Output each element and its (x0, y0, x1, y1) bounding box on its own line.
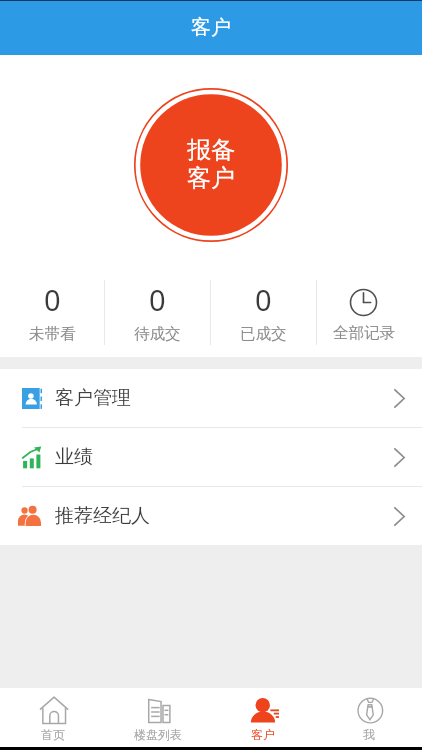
button[interactable]: 全部记录 (317, 271, 422, 353)
button[interactable]: 客户管理 (0, 369, 422, 427)
button[interactable]: 我 (316, 688, 422, 750)
staticText: 客户 (191, 15, 231, 40)
staticText: 0 (255, 280, 272, 319)
button[interactable]: 0 (211, 271, 316, 353)
button[interactable]: 推荐经纪人 (0, 487, 422, 545)
staticText: 0 (149, 280, 166, 319)
staticText: 客户管理 (55, 386, 131, 410)
staticText: 未带看 (29, 324, 76, 344)
button[interactable]: 报备 客户 (133, 87, 289, 243)
staticText: 我 (363, 727, 375, 742)
staticText: 首页 (41, 727, 65, 742)
staticText: 业绩 (55, 445, 93, 469)
staticText: 全部记录 (333, 323, 395, 343)
staticText: 楼盘列表 (134, 727, 182, 742)
staticText: 报备 客户 (187, 135, 235, 193)
staticText: 推荐经纪人 (55, 504, 150, 528)
button[interactable]: 业绩 (0, 428, 422, 486)
staticText: 0 (44, 280, 61, 319)
button[interactable]: 楼盘列表 (105, 688, 210, 750)
staticText: 待成交 (134, 324, 181, 344)
button[interactable]: 0 (105, 271, 210, 353)
staticText: 客户 (251, 727, 275, 742)
staticText: 已成交 (240, 324, 287, 344)
button[interactable]: 客户 (210, 688, 316, 750)
button[interactable]: 首页 (0, 688, 105, 750)
button[interactable]: 0 (0, 271, 104, 353)
